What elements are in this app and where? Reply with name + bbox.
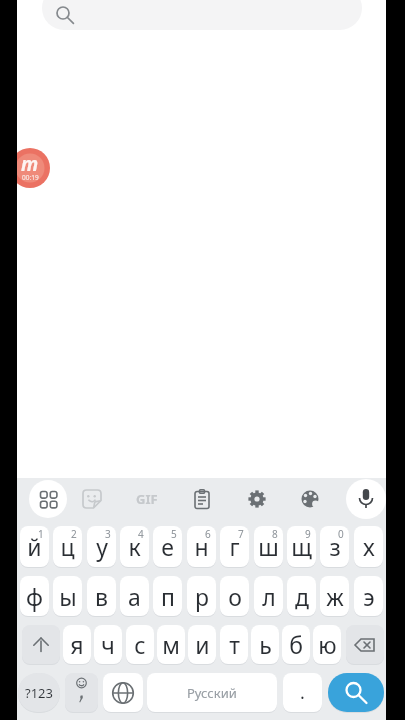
staticText: ц (60, 531, 75, 562)
button[interactable] (346, 625, 384, 664)
button[interactable] (42, 0, 362, 30)
staticText: 8 (272, 527, 278, 541)
staticText: м (162, 629, 180, 660)
staticText: р (195, 581, 209, 612)
button[interactable]: ш (254, 526, 283, 567)
button[interactable] (80, 487, 104, 511)
button[interactable]: ы (53, 576, 82, 616)
staticText: э (363, 581, 375, 612)
staticText: т (229, 629, 240, 660)
button[interactable]: в (87, 576, 116, 616)
staticText: ч (101, 629, 115, 660)
button[interactable] (245, 487, 269, 511)
staticText: с (134, 629, 146, 660)
staticText: щ (291, 531, 312, 562)
staticText: к (128, 531, 141, 562)
button[interactable]: я (63, 625, 91, 664)
button[interactable]: GIF (133, 489, 161, 509)
staticText: й (27, 531, 42, 562)
staticText: д (295, 581, 309, 612)
button[interactable]: щ (287, 526, 316, 567)
staticText: 1 (38, 527, 44, 541)
staticText: я (70, 629, 84, 660)
staticText: п (161, 581, 175, 612)
button[interactable] (103, 673, 143, 712)
button[interactable]: и (188, 625, 216, 664)
button[interactable]: ж (320, 576, 349, 616)
button[interactable] (29, 480, 67, 518)
staticText: . (300, 680, 305, 705)
staticText: и (195, 629, 210, 660)
button[interactable]: ?123 (18, 673, 60, 712)
button[interactable] (22, 625, 60, 664)
button[interactable]: п (153, 576, 182, 616)
button[interactable]: к (120, 526, 149, 567)
staticText: 00:19 (22, 173, 39, 182)
button[interactable]: . (283, 673, 322, 712)
staticText: 6 (205, 527, 211, 541)
button[interactable]: ь (251, 625, 279, 664)
button[interactable]: ю (313, 625, 341, 664)
button[interactable]: у (87, 526, 116, 567)
button[interactable]: т (220, 625, 248, 664)
staticText: б (289, 629, 303, 660)
staticText: х (363, 531, 375, 562)
staticText: ж (326, 581, 344, 612)
button[interactable] (298, 487, 322, 511)
staticText: е (161, 531, 174, 562)
staticText: ю (318, 629, 337, 660)
staticText: о (228, 581, 242, 612)
button[interactable]: р (187, 576, 216, 616)
button[interactable] (190, 487, 214, 511)
staticText: GIF (136, 490, 158, 508)
button[interactable] (328, 673, 384, 712)
staticText: в (95, 581, 108, 612)
button[interactable]: э (354, 576, 383, 616)
button[interactable]: Русский (147, 673, 277, 712)
staticText: 5 (171, 527, 177, 541)
button[interactable]: ч (94, 625, 122, 664)
staticText: з (329, 531, 341, 562)
button[interactable]: с (126, 625, 154, 664)
staticText: 9 (305, 527, 311, 541)
staticText: г (229, 531, 240, 562)
button[interactable]: м (157, 625, 185, 664)
staticText: 7 (238, 527, 244, 541)
button[interactable]: ц (53, 526, 82, 567)
staticText: 4 (138, 527, 144, 541)
staticText: 2 (71, 527, 77, 541)
button[interactable]: х (354, 526, 383, 567)
button[interactable]: й (20, 526, 49, 567)
staticText: ь (259, 629, 272, 660)
button[interactable]: л (254, 576, 283, 616)
button[interactable]: о (220, 576, 249, 616)
button[interactable] (346, 479, 386, 519)
staticText: ы (59, 581, 77, 612)
button[interactable]: д (287, 576, 316, 616)
staticText: ?123 (25, 684, 53, 702)
staticText: у (96, 531, 108, 562)
staticText: 3 (105, 527, 111, 541)
staticText: ш (258, 531, 279, 562)
button[interactable]: е (153, 526, 182, 567)
button[interactable]: г (220, 526, 249, 567)
button[interactable]: б (282, 625, 310, 664)
button[interactable]: а (120, 576, 149, 616)
button[interactable] (65, 673, 98, 712)
staticText: н (194, 531, 209, 562)
staticText: m (21, 151, 39, 177)
staticText: ф (26, 581, 43, 612)
button[interactable]: з (320, 526, 349, 567)
staticText: 0 (338, 527, 344, 541)
staticText: Русский (187, 684, 237, 702)
button[interactable]: m (17, 148, 50, 188)
button[interactable]: н (187, 526, 216, 567)
staticText: л (262, 581, 276, 612)
staticText: а (128, 581, 141, 612)
button[interactable]: ф (20, 576, 49, 616)
